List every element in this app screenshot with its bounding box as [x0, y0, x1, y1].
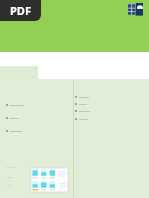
button[interactable]: Logo — [128, 3, 143, 16]
button[interactable]: PDF — [0, 0, 41, 21]
button[interactable] — [31, 168, 68, 192]
staticText: PDF — [10, 3, 31, 18]
